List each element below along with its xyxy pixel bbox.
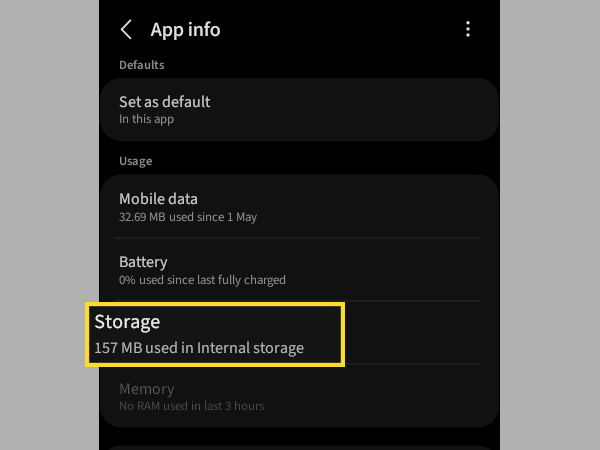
button[interactable]: More options: [450, 11, 486, 47]
button[interactable]: Set as default, In this app: [100, 78, 499, 141]
button[interactable]: Battery, 0% used since last fully charge…: [100, 238, 499, 301]
button[interactable]: Mobile data, 32.69 MB used since 1 May: [100, 175, 499, 238]
button[interactable]: Storage, 157 MB used in Internal storage: [85, 302, 345, 367]
button[interactable]: Memory, No RAM used in last 3 hours: [100, 365, 499, 428]
button[interactable]: Storage, 157 MB used in Internal storage: [100, 301, 499, 364]
button[interactable]: Navigate up: [108, 11, 144, 47]
